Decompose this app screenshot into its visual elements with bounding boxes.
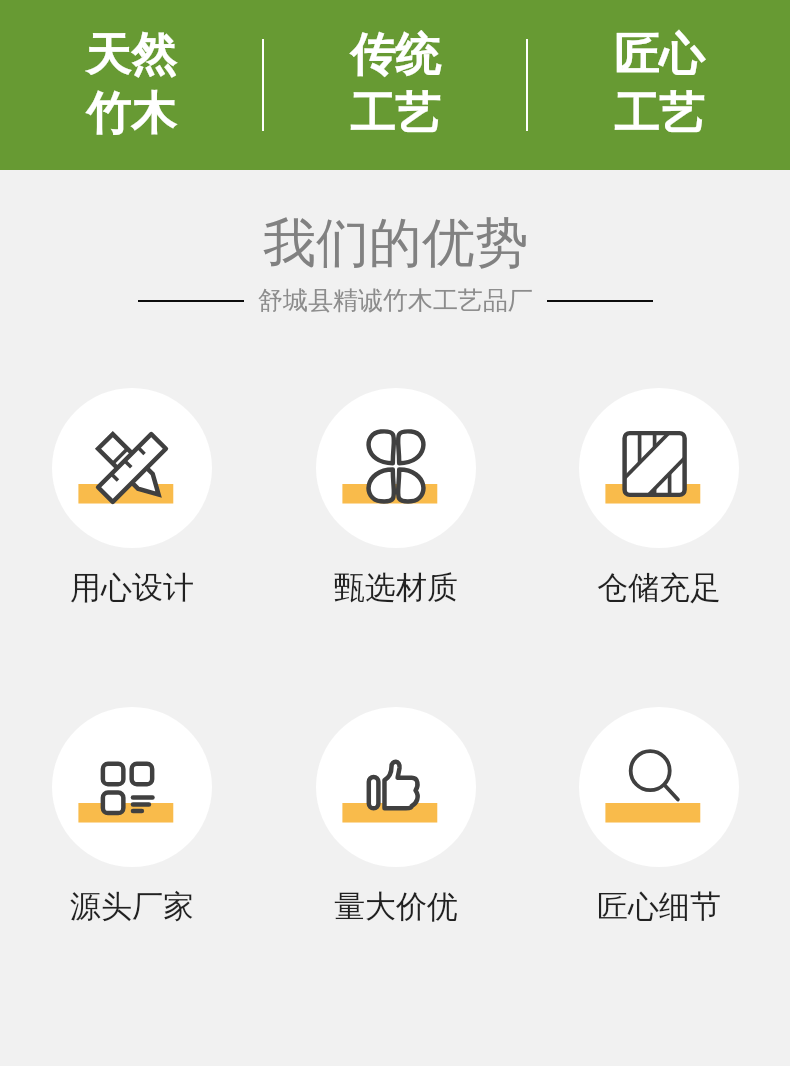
other: 仓储充足 [579,388,739,548]
button[interactable]: 传统 [264,19,526,151]
staticText: 用心设计 [70,568,194,607]
button[interactable]: 仓储充足 [527,388,790,607]
staticText: 工艺 [614,86,704,143]
staticText: 源头厂家 [70,887,194,926]
button[interactable]: 源头厂家 [0,707,264,926]
staticText: 传统 [350,27,440,84]
staticText: 我们的优势 [263,210,528,277]
staticText: 匠心细节 [597,887,721,926]
staticText: 匠心 [614,27,704,84]
staticText: 甄选材质 [334,568,458,607]
button[interactable]: 匠心细节 [527,707,790,926]
other: 源头厂家 [52,707,212,867]
other: 量大价优 [316,707,476,867]
staticText: 竹木 [86,86,176,143]
staticText: 量大价优 [334,887,458,926]
button[interactable]: 甄选材质 [264,388,527,607]
button[interactable]: 量大价优 [264,707,527,926]
staticText: 天然 [86,27,176,84]
staticText: 舒城县精诚竹木工艺品厂 [258,285,533,316]
staticText: 仓储充足 [597,568,721,607]
staticText: 工艺 [350,86,440,143]
other: 匠心细节 [579,707,739,867]
button[interactable]: 天然 [0,19,262,151]
other: 甄选材质 [316,388,476,548]
other: 用心设计 [52,388,212,548]
button[interactable]: 匠心 [528,19,790,151]
button[interactable]: 用心设计 [0,388,264,607]
